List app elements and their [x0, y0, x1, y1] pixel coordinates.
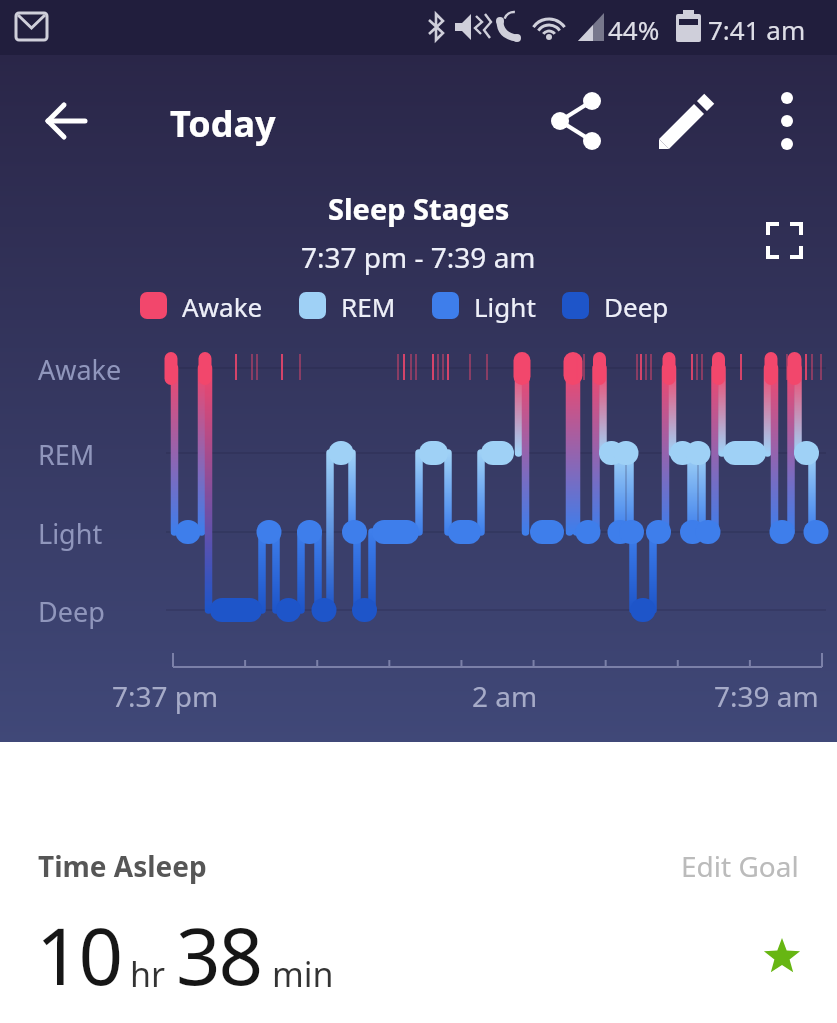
staticText: Awake [38, 351, 122, 388]
staticText: Deep [38, 593, 105, 630]
staticText: Awake [182, 289, 263, 324]
staticText: 2 am [472, 677, 538, 715]
staticText: Light [474, 289, 536, 324]
staticText: 10 [36, 902, 122, 1008]
staticText: Edit Goal [681, 847, 799, 885]
staticText: min [272, 951, 334, 997]
staticText: REM [38, 436, 95, 473]
staticText: Light [38, 515, 103, 552]
staticText: 38 [176, 902, 262, 1008]
staticText: Deep [604, 289, 669, 324]
staticText: hr [130, 951, 166, 997]
staticText: Today [170, 99, 276, 148]
staticText: 7:41 am [708, 12, 806, 47]
staticText: Sleep Stages [328, 189, 510, 228]
staticText: 7:37 pm - 7:39 am [301, 238, 536, 276]
staticText: 7:37 pm [112, 677, 219, 715]
staticText: REM [341, 289, 396, 324]
staticText: 44% [608, 12, 660, 47]
staticText: Time Asleep [38, 847, 207, 885]
staticText: 7:39 am [714, 677, 819, 715]
